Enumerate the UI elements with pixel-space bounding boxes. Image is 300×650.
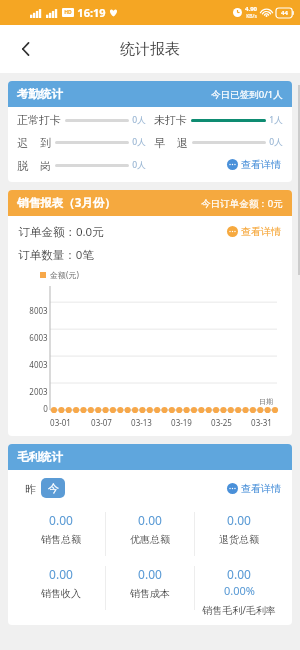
button[interactable]: 0.00: [106, 512, 194, 546]
staticText: 订单数量：0笔: [18, 247, 94, 263]
staticText: 迟 到: [17, 135, 51, 150]
staticText: 8003: [29, 305, 48, 316]
staticText: 0.00: [227, 512, 251, 528]
staticText: 0: [43, 403, 48, 414]
staticText: 03-01: [50, 417, 71, 428]
staticText: 0人: [269, 136, 283, 148]
staticText: 考勤统计: [17, 87, 63, 101]
staticText: 销售毛利/毛利率: [202, 603, 276, 617]
staticText: 金额(元): [50, 269, 79, 280]
staticText: 查看详情: [241, 225, 281, 238]
staticText: 03-25: [211, 417, 232, 428]
staticText: 4.90: [245, 5, 257, 13]
button[interactable]: 0.00: [106, 566, 194, 600]
staticText: 0人: [132, 159, 146, 171]
staticText: 优惠总额: [130, 533, 170, 546]
staticText: 0.00: [49, 566, 73, 582]
button[interactable]: 查看详情: [225, 480, 283, 497]
staticText: 6003: [29, 332, 48, 343]
button[interactable]: 今: [41, 478, 65, 498]
staticText: 1人: [269, 114, 283, 126]
staticText: KB/s: [246, 13, 257, 20]
button[interactable]: 0.00: [17, 512, 105, 546]
button[interactable]: 昨: [19, 479, 41, 498]
staticText: 销售总额: [41, 533, 81, 546]
staticText: 昨: [25, 482, 36, 496]
button[interactable]: 0.00: [17, 566, 105, 600]
staticText: 查看详情: [241, 482, 281, 495]
button[interactable]: 查看详情: [225, 223, 283, 240]
staticText: 早 退: [154, 135, 188, 150]
staticText: 日期: [259, 397, 273, 406]
staticText: HD: [64, 9, 72, 16]
staticText: 未打卡: [154, 113, 187, 127]
staticText: 4003: [29, 359, 48, 370]
staticText: 销售报表（3月份）: [17, 195, 116, 211]
staticText: 统计报表: [120, 40, 180, 59]
staticText: 03-19: [171, 417, 192, 428]
staticText: 0.00: [227, 566, 251, 582]
button[interactable]: 0.00: [195, 512, 283, 546]
staticText: 脱 岗: [17, 158, 51, 173]
staticText: 0.00: [49, 512, 73, 528]
staticText: 16:19: [77, 5, 106, 20]
staticText: 正常打卡: [17, 113, 61, 127]
staticText: 03-31: [251, 417, 272, 428]
staticText: 订单金额：0.0元: [18, 224, 104, 240]
staticText: 03-07: [91, 417, 112, 428]
button[interactable]: 查看详情: [225, 156, 283, 173]
staticText: 0人: [132, 136, 146, 148]
staticText: 销售收入: [41, 587, 81, 600]
staticText: 0.00: [138, 512, 162, 528]
button[interactable]: Back: [6, 29, 46, 69]
staticText: 03-13: [131, 417, 152, 428]
staticText: 0.00%: [224, 583, 255, 598]
button[interactable]: 0.00: [195, 566, 283, 617]
staticText: 退货总额: [219, 533, 259, 546]
staticText: 2003: [29, 386, 48, 397]
staticText: 今日已签到0/1人: [211, 88, 283, 101]
staticText: 今日订单金额：0元: [201, 197, 283, 210]
staticText: 0.00: [138, 566, 162, 582]
staticText: 今: [48, 481, 59, 495]
staticText: 44: [281, 9, 288, 17]
staticText: 查看详情: [241, 158, 281, 171]
staticText: 0人: [132, 114, 146, 126]
staticText: 销售成本: [130, 587, 170, 600]
staticText: 毛利统计: [17, 450, 63, 464]
